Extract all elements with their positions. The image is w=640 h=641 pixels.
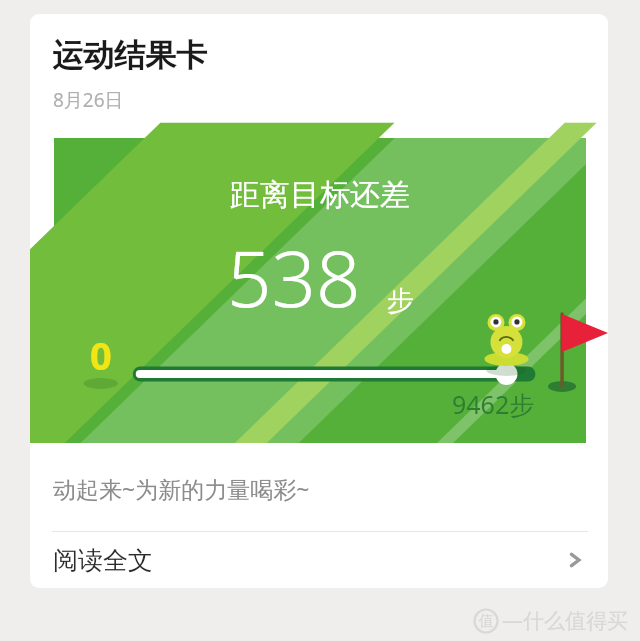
staticText: 动起来~为新的力量喝彩~: [53, 473, 310, 504]
staticText: 值: [479, 612, 494, 631]
button[interactable]: 距离目标还差: [54, 138, 586, 443]
staticText: 0: [90, 329, 112, 381]
staticText: 538: [227, 224, 361, 330]
staticText: 阅读全文: [53, 545, 153, 576]
button[interactable]: 阅读全文: [30, 532, 608, 588]
staticText: 运动结果卡: [52, 36, 207, 75]
staticText: 步: [387, 284, 414, 318]
other: 阅读全文: [564, 549, 586, 571]
staticText: 距离目标还差: [230, 176, 410, 214]
staticText: 8月26日: [53, 87, 124, 113]
staticText: —什么值得买: [502, 606, 628, 635]
staticText: 9462步: [452, 387, 535, 421]
